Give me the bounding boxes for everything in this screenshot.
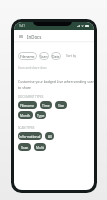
button[interactable]: Multi <box>34 143 46 151</box>
staticText: InDocs <box>27 34 42 40</box>
button[interactable]: Informational <box>18 132 42 140</box>
staticText: Time <box>42 103 50 107</box>
staticText: Month <box>20 113 31 117</box>
staticText: Customise your badged Live when sending … <box>18 79 94 84</box>
staticText: All <box>48 134 52 138</box>
button[interactable]: Time <box>40 101 52 109</box>
button[interactable]: Month <box>18 111 33 119</box>
button[interactable]: Filename <box>18 101 37 109</box>
button[interactable]: Type <box>35 111 46 119</box>
staticText: Filename <box>20 103 35 107</box>
button[interactable]: Open navigation menu <box>16 32 25 41</box>
staticText: Type <box>37 113 45 117</box>
staticText: Sort by <box>66 54 77 58</box>
staticText: Scan and share docs <box>18 66 47 70</box>
button[interactable]: Scan <box>18 143 31 151</box>
staticText: Scan <box>40 54 48 59</box>
button[interactable]: Size <box>55 101 67 109</box>
button[interactable]: All <box>45 132 54 140</box>
staticText: Filename <box>20 54 35 59</box>
staticText: 9:41 <box>19 24 25 28</box>
staticText: Date <box>52 54 60 59</box>
staticText: DOCUMENT TYPES <box>18 95 44 99</box>
button[interactable]: Scan <box>39 52 49 60</box>
button[interactable]: Filename <box>18 52 37 60</box>
staticText: to share <box>18 85 32 90</box>
staticText: Informational <box>19 134 41 138</box>
staticText: Size <box>58 103 65 107</box>
staticText: Multi <box>36 145 44 149</box>
staticText: SCAN TYPES <box>18 126 35 130</box>
button[interactable]: Date <box>51 52 61 60</box>
staticText: Scan <box>21 145 29 149</box>
